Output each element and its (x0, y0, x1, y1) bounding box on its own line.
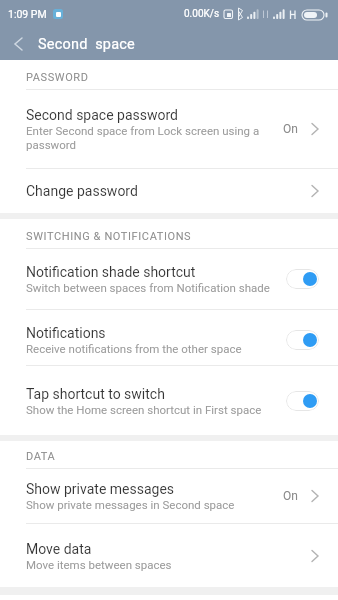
button[interactable]: Notification shade shortcut (0, 249, 338, 309)
staticText: Show private messages in Second space (26, 498, 235, 511)
staticText: Second space (38, 36, 135, 53)
staticText: PASSWORD (26, 71, 89, 84)
staticText: 0.00K/s (184, 8, 220, 20)
staticText: Move data (26, 541, 92, 557)
staticText: Notification shade shortcut (26, 264, 196, 280)
staticText: On (283, 489, 298, 503)
button[interactable] (0, 28, 36, 60)
staticText: SWITCHING & NOTIFICATIONS (26, 230, 192, 243)
staticText: Move items between spaces (26, 558, 172, 571)
staticText: On (283, 122, 298, 136)
staticText: Enter Second space from Lock screen usin… (26, 124, 260, 152)
staticText: Change password (26, 183, 138, 199)
button[interactable]: Move data (0, 524, 338, 587)
staticText: 1:09 PM (8, 8, 47, 20)
button[interactable]: Change password (0, 169, 338, 213)
button[interactable]: Show private messages (0, 469, 338, 523)
staticText: Receive notifications from the other spa… (26, 342, 242, 355)
button[interactable]: Notifications (0, 310, 338, 365)
staticText: Show private messages (26, 481, 175, 497)
staticText: Tap shortcut to switch (26, 386, 165, 402)
button[interactable]: Second space password (0, 90, 338, 168)
button[interactable]: Tap shortcut to switch (0, 366, 338, 435)
staticText: Notifications (26, 325, 106, 341)
staticText: Show the Home screen shortcut in First s… (26, 403, 262, 416)
staticText: Switch between spaces from Notification … (26, 281, 270, 294)
staticText: DATA (26, 450, 56, 463)
staticText: Second space password (26, 107, 179, 123)
